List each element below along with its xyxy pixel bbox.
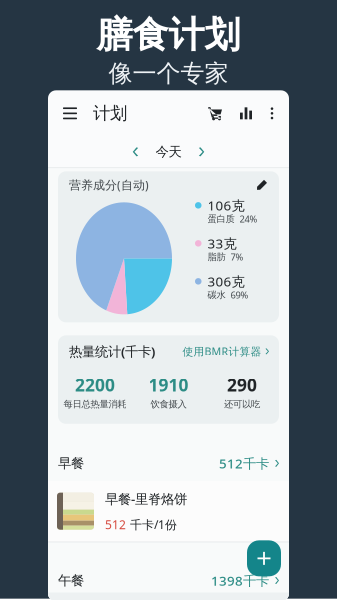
button[interactable]: 早餐-里脊烙饼	[48, 481, 289, 541]
button[interactable]: More options	[257, 103, 280, 123]
staticText: 早餐	[58, 455, 84, 471]
button[interactable]: 计划	[81, 103, 127, 124]
staticText: 营养成分(自动)	[69, 177, 149, 193]
button[interactable]: 使用BMR计算器	[182, 344, 269, 358]
staticText: 还可以吃	[224, 398, 260, 410]
staticText: 午餐	[58, 572, 84, 589]
button[interactable]: Menu	[59, 103, 81, 123]
staticText: 计划	[93, 103, 127, 124]
staticText: 7%	[230, 251, 243, 263]
staticText: 早餐-里脊烙饼	[105, 490, 187, 507]
button[interactable]: Edit nutrition	[254, 177, 270, 193]
button[interactable]: Next day	[191, 143, 211, 161]
staticText: 千卡/1份	[126, 516, 177, 532]
button[interactable]: Statistics	[226, 103, 257, 123]
staticText: 使用BMR计算器	[182, 344, 261, 358]
staticText: 69%	[230, 289, 248, 301]
staticText: 512	[105, 516, 126, 532]
staticText: 碳水	[207, 289, 225, 301]
button[interactable]: Previous day	[125, 143, 145, 161]
button[interactable]: Shopping list	[204, 103, 226, 123]
button[interactable]: 早餐	[48, 446, 289, 481]
button[interactable]: Add food	[247, 540, 281, 576]
staticText: 蛋白质	[207, 213, 234, 225]
staticText: 106克	[207, 196, 244, 214]
staticText: 每日总热量消耗	[63, 398, 126, 410]
button[interactable]: 午餐	[48, 568, 289, 592]
staticText: 512千卡	[219, 454, 269, 472]
staticText: 1910	[148, 373, 188, 396]
staticText: 像一个专家	[108, 59, 228, 88]
staticText: 290	[227, 373, 257, 396]
staticText: 33克	[207, 234, 236, 252]
staticText: 2200	[75, 373, 115, 396]
staticText: 24%	[239, 213, 257, 225]
staticText: 1398千卡	[211, 572, 269, 589]
staticText: 306克	[207, 272, 244, 290]
staticText: 热量统计(千卡)	[69, 342, 155, 360]
staticText: 饮食摄入	[150, 398, 186, 410]
staticText: 脂肪	[207, 251, 225, 263]
staticText: 膳食计划	[96, 13, 240, 57]
staticText: 今天	[155, 144, 181, 160]
